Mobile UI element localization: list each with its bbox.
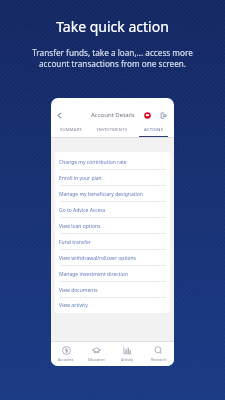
staticText: Enroll in your plan [59, 175, 102, 182]
button[interactable]: View withdrawal/rollover options [55, 250, 170, 266]
button[interactable]: Go to Advice Access [55, 202, 170, 218]
staticText: Education [88, 357, 105, 362]
button[interactable]: Fund transfer [55, 234, 170, 250]
button[interactable]: View loan options [55, 218, 170, 234]
staticText: Transfer funds, take a loan,... access m… [32, 47, 193, 70]
staticText: View documents [59, 287, 98, 294]
staticText: View withdrawal/rollover options [59, 255, 137, 262]
button[interactable]: View documents [55, 282, 170, 298]
staticText: INVESTMENTS [97, 127, 128, 133]
button[interactable]: Back [54, 110, 65, 121]
button[interactable]: SUMMARY [51, 122, 92, 137]
button[interactable]: Research [143, 342, 174, 366]
button[interactable]: Share [159, 111, 168, 120]
staticText: ACTIONS [144, 127, 164, 133]
staticText: Research [151, 357, 167, 362]
staticText: View loan options [59, 223, 101, 230]
staticText: Accounts [58, 357, 74, 362]
staticText: Manage my beneficiary designation [59, 191, 143, 198]
button[interactable]: Change my contribution rate [55, 154, 170, 170]
button[interactable]: INVESTMENTS [92, 122, 133, 137]
button[interactable]: Activity [112, 342, 143, 366]
staticText: SUMMARY [60, 127, 83, 133]
staticText: Account Details [91, 111, 135, 119]
button[interactable]: Enroll in your plan [55, 170, 170, 186]
button[interactable]: Manage investment direction [55, 266, 170, 282]
button[interactable]: Messages [143, 111, 152, 120]
button[interactable]: Manage my beneficiary designation [55, 186, 170, 202]
staticText: Change my contribution rate [59, 159, 127, 166]
button[interactable]: Education [81, 342, 112, 366]
staticText: Activity [121, 357, 134, 362]
button[interactable]: Accounts [51, 342, 81, 366]
staticText: Fund transfer [59, 239, 91, 246]
button[interactable]: View activity [55, 298, 170, 313]
button[interactable]: ACTIONS [133, 122, 174, 137]
staticText: View activity [59, 302, 88, 309]
staticText: Go to Advice Access [59, 207, 106, 214]
staticText: Manage investment direction [59, 271, 128, 278]
staticText: Take quick action [56, 17, 169, 36]
